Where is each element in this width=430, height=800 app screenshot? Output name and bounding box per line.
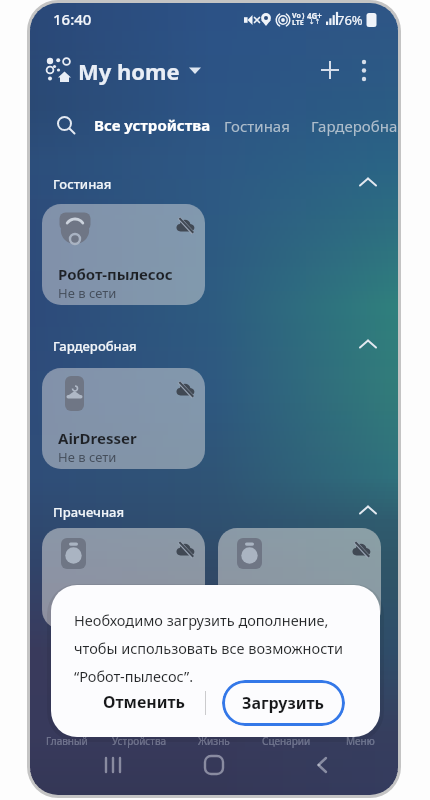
button[interactable] <box>352 497 384 525</box>
button[interactable]: Жизнь <box>177 729 250 753</box>
staticText: Гардеробная <box>311 116 398 136</box>
staticText: Необходимо загрузить дополнение, чтобы и… <box>74 610 344 686</box>
staticText: ↓↑ <box>309 18 321 26</box>
staticText: Все устройства <box>94 115 211 135</box>
button[interactable] <box>42 528 205 629</box>
button[interactable] <box>218 528 381 629</box>
button[interactable] <box>52 111 80 139</box>
staticText: 16:40 <box>53 9 92 29</box>
staticText: Главный <box>46 734 88 748</box>
button[interactable] <box>194 751 234 785</box>
button[interactable]: Робот-пылесос <box>42 204 205 305</box>
button[interactable]: Устройства <box>103 729 176 753</box>
button[interactable]: Меню <box>324 729 397 753</box>
staticText: Меню <box>346 734 375 748</box>
staticText: Отменить <box>103 691 186 713</box>
staticText: Сценарии <box>262 734 311 748</box>
staticText: Не в сети <box>58 284 117 302</box>
button[interactable] <box>352 331 384 359</box>
staticText: Гостиная <box>224 116 290 136</box>
staticText: Прачечная <box>53 503 125 521</box>
button[interactable]: Загрузить <box>222 680 345 726</box>
button[interactable] <box>352 56 376 84</box>
button[interactable]: Гардеробная <box>311 116 398 136</box>
button[interactable]: Все устройства <box>94 115 211 135</box>
button[interactable]: My home <box>78 56 208 86</box>
staticText: Vo ) <box>292 11 305 21</box>
staticText: Гостиная <box>53 175 112 193</box>
button[interactable]: Сценарии <box>250 729 323 753</box>
button[interactable] <box>352 169 384 197</box>
button[interactable] <box>96 751 136 785</box>
button[interactable]: AirDresser <box>42 368 205 469</box>
staticText: 76% <box>337 11 363 29</box>
staticText: Загрузить <box>242 692 325 714</box>
staticText: Устройства <box>112 734 167 748</box>
button[interactable]: Отменить <box>90 681 198 723</box>
button[interactable]: Главный <box>30 729 103 753</box>
button[interactable] <box>302 751 342 785</box>
button[interactable]: Гостиная <box>224 116 290 136</box>
staticText: Робот-пылесос <box>58 264 173 284</box>
staticText: 4G+ <box>307 10 322 21</box>
staticText: Не в сети <box>58 448 117 466</box>
button[interactable] <box>316 56 344 84</box>
staticText: Жизнь <box>198 734 230 748</box>
staticText: AirDresser <box>58 428 137 448</box>
staticText: My home <box>78 56 180 86</box>
staticText: LTE <box>292 18 304 28</box>
staticText: Гардеробная <box>53 337 137 355</box>
